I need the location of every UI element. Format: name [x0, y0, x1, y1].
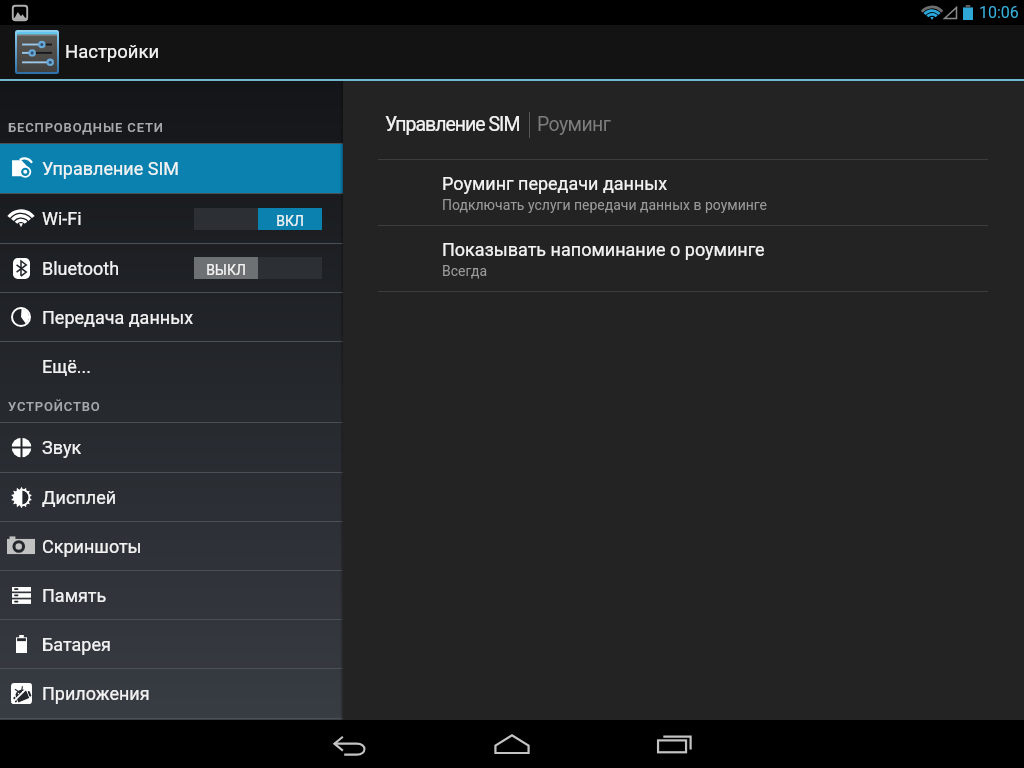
staticText: ВКЛ: [276, 213, 304, 229]
staticText: Роуминг передачи данных: [442, 173, 668, 194]
staticText: ВЫКЛ: [206, 262, 246, 278]
staticText: Показывать напоминание о роуминге: [442, 239, 765, 260]
staticText: БЕСПРОВОДНЫЕ СЕТИ: [8, 120, 164, 135]
button[interactable]: Передача данных: [0, 293, 343, 341]
staticText: Роуминг: [537, 113, 611, 136]
staticText: Управление SIM: [42, 158, 180, 179]
button[interactable]: Звук: [0, 423, 343, 472]
button[interactable]: Bluetooth: [0, 244, 343, 292]
staticText: Дисплей: [42, 487, 117, 508]
button[interactable]: Приложения: [0, 669, 343, 718]
staticText: Приложения: [42, 683, 150, 704]
staticText: Скриншоты: [42, 536, 142, 557]
button[interactable]: Скриншоты: [0, 522, 343, 570]
staticText: Bluetooth: [42, 258, 120, 279]
button[interactable]: Управление SIM: [0, 144, 343, 193]
staticText: Wi-Fi: [42, 208, 82, 229]
button[interactable]: Turn off: [194, 208, 322, 230]
staticText: Подключать услуги передачи данных в роум…: [442, 197, 768, 213]
button[interactable]: Back: [269, 720, 431, 768]
button[interactable]: Память: [0, 571, 343, 619]
staticText: Управление SIM: [385, 113, 520, 136]
button[interactable]: Показывать напоминание о роуминге: [343, 226, 1024, 291]
staticText: Всегда: [442, 263, 488, 279]
button[interactable]: Wi-Fi: [0, 194, 343, 243]
button[interactable]: Батарея: [0, 620, 343, 668]
staticText: УСТРОЙСТВО: [8, 399, 101, 414]
staticText: Звук: [42, 437, 82, 458]
button[interactable]: Home: [431, 720, 593, 768]
button[interactable]: Settings: [15, 30, 59, 74]
button[interactable]: Recent apps: [593, 720, 755, 768]
button[interactable]: Роуминг передачи данных: [343, 160, 1024, 225]
staticText: Память: [42, 585, 107, 606]
button[interactable]: Дисплей: [0, 473, 343, 521]
staticText: Батарея: [42, 634, 111, 655]
button[interactable]: Ещё...: [0, 342, 343, 391]
staticText: Ещё...: [42, 356, 92, 377]
staticText: Передача данных: [42, 307, 194, 328]
staticText: 10:06: [979, 3, 1019, 22]
button[interactable]: Turn on: [194, 257, 322, 279]
staticText: Настройки: [65, 41, 160, 63]
